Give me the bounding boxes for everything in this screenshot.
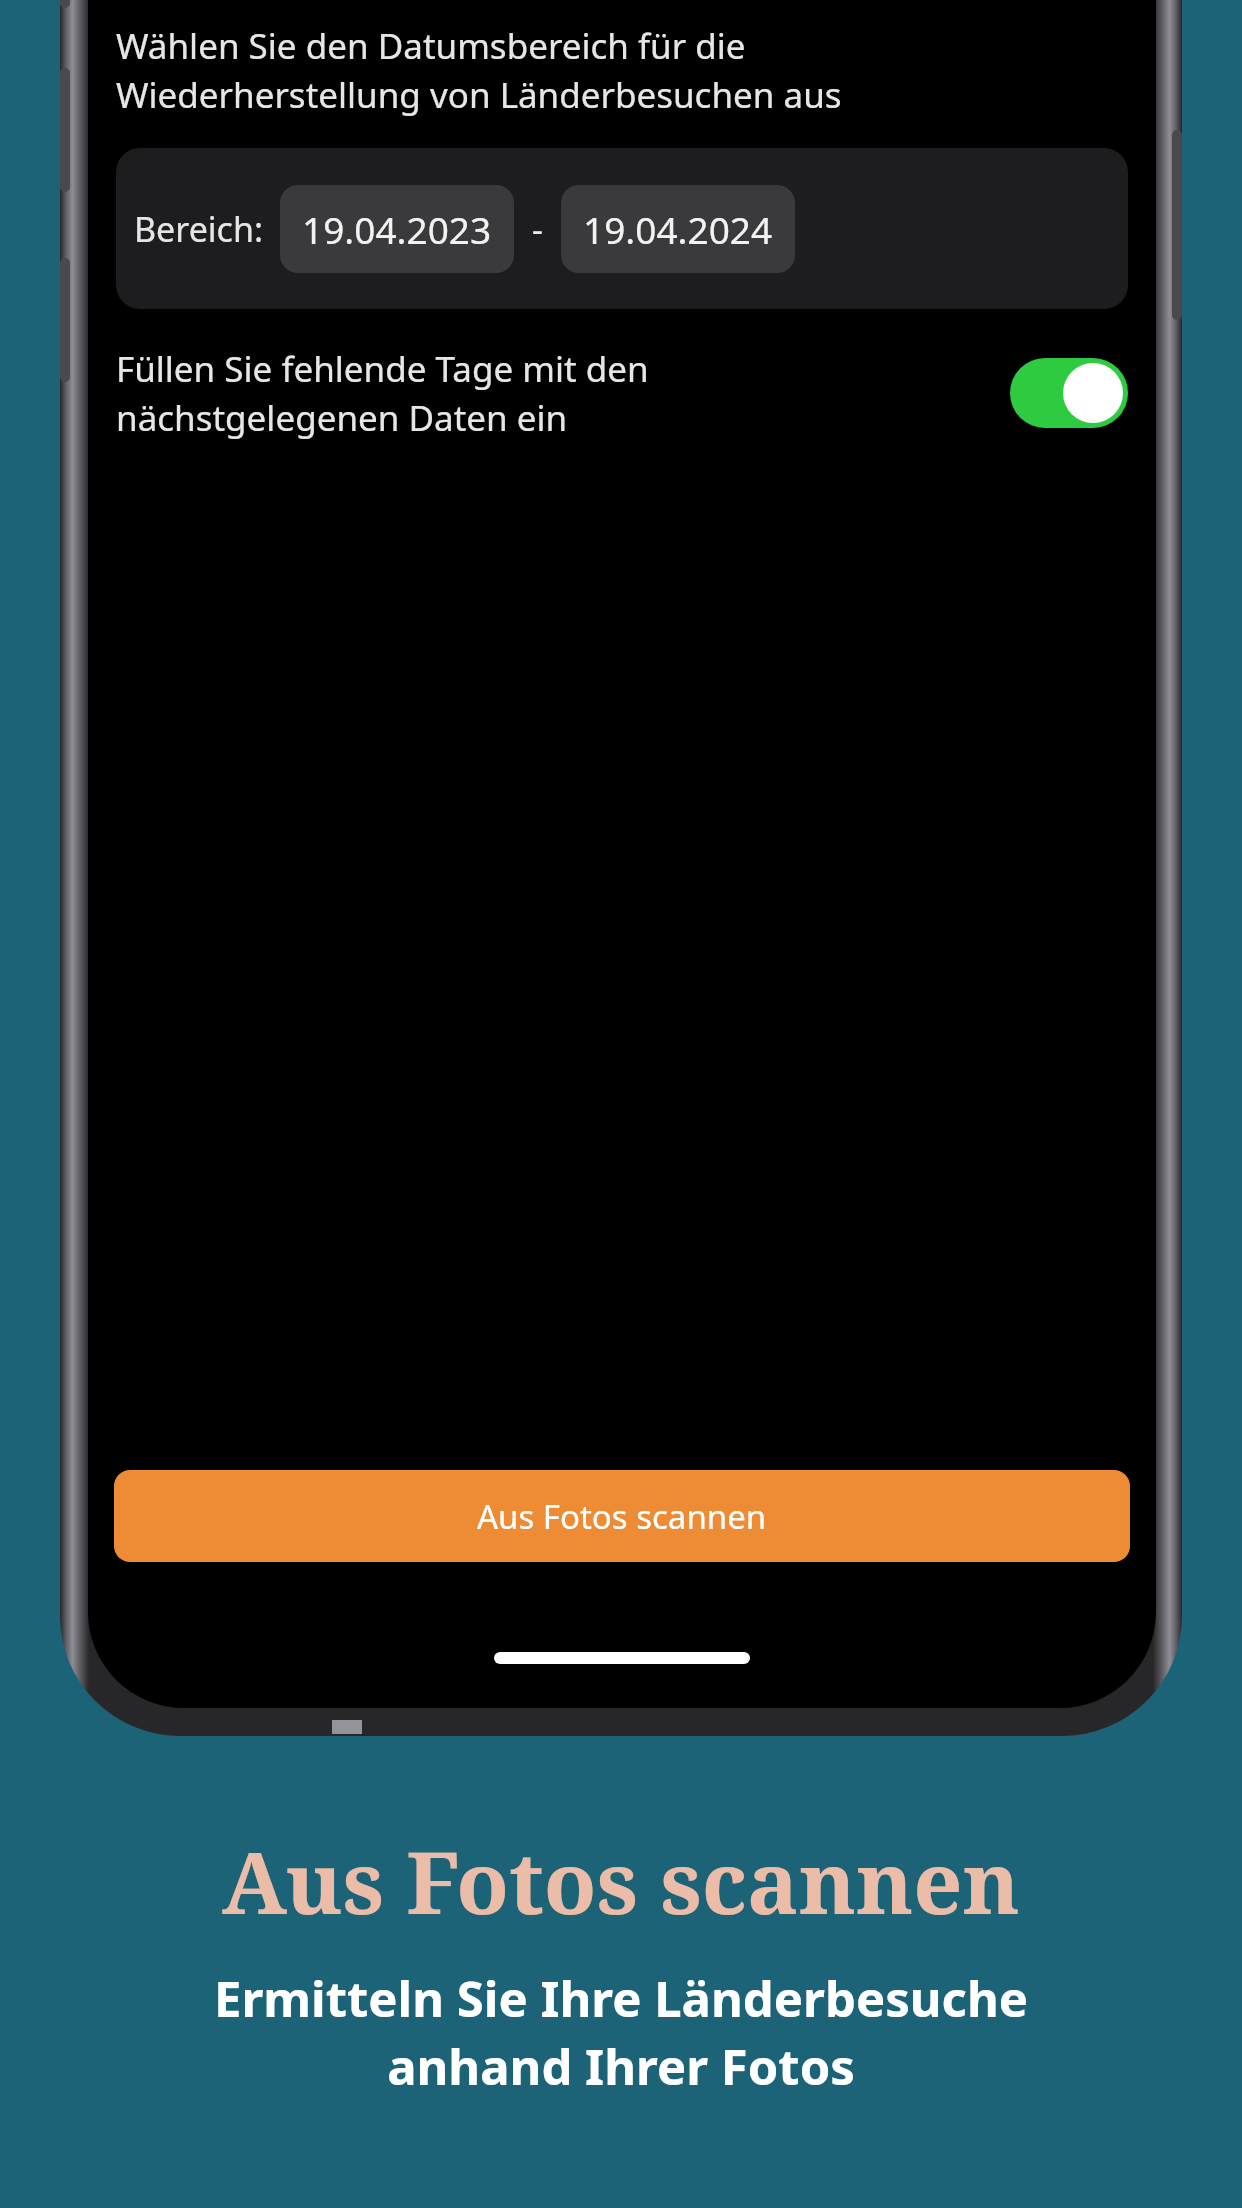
staticText: Aus Fotos scannen xyxy=(477,1494,767,1539)
staticText: 19.04.2024 xyxy=(583,204,773,254)
staticText: - xyxy=(532,206,543,252)
staticText: Aus Fotos scannen xyxy=(222,1822,1020,1939)
staticText: 19.04.2023 xyxy=(302,204,492,254)
button[interactable]: Fehlende Tage auffüllen xyxy=(1010,358,1128,428)
staticText: Bereich: xyxy=(134,206,264,252)
button[interactable]: 19.04.2023 xyxy=(280,185,514,273)
staticText: Ermitteln Sie Ihre Länderbesuche anhand … xyxy=(214,1965,1028,2100)
button[interactable]: 19.04.2024 xyxy=(561,185,795,273)
button[interactable]: Füllen Sie fehlende Tage mit den nächstg… xyxy=(116,345,1128,441)
staticText: Füllen Sie fehlende Tage mit den nächstg… xyxy=(116,345,1000,441)
staticText: Wählen Sie den Datumsbereich für die Wie… xyxy=(116,22,842,118)
button[interactable]: Aus Fotos scannen xyxy=(114,1470,1130,1562)
